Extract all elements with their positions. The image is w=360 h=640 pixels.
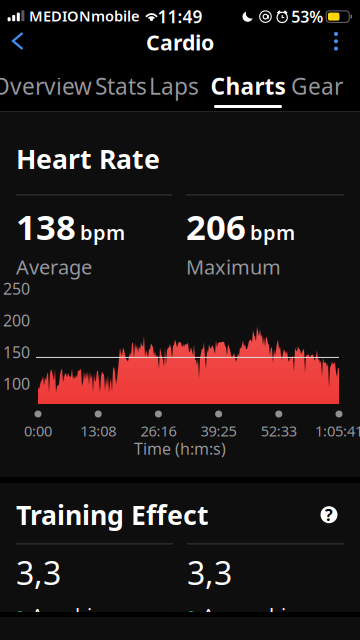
- staticText: Cardio: [146, 28, 214, 56]
- staticText: MEDIONmobile: [29, 6, 140, 25]
- staticText: ?: [325, 504, 333, 525]
- button[interactable]: Stats: [97, 59, 145, 112]
- staticText: Heart Rate: [16, 141, 160, 176]
- staticText: 1:05:41: [315, 421, 360, 440]
- staticText: Gear: [291, 71, 343, 101]
- staticText: 26:16: [140, 421, 176, 440]
- staticText: Stats: [95, 71, 147, 101]
- staticText: Training Effect: [16, 497, 209, 532]
- button[interactable]: Charts: [214, 59, 282, 112]
- staticText: Charts: [210, 71, 285, 101]
- button[interactable]: Gear: [291, 59, 343, 112]
- staticText: Laps: [149, 71, 199, 101]
- button[interactable]: Laps: [153, 59, 195, 112]
- staticText: bpm: [250, 219, 295, 245]
- button[interactable]: Help: [314, 500, 344, 530]
- staticText: Aerobic: [31, 602, 102, 628]
- staticText: 13:08: [80, 421, 116, 440]
- staticText: 150: [3, 341, 30, 362]
- staticText: 0:00: [24, 421, 52, 440]
- staticText: 250: [3, 278, 30, 299]
- staticText: 200: [3, 310, 30, 331]
- staticText: 3,3: [16, 551, 61, 594]
- staticText: 206: [186, 203, 246, 249]
- staticText: 100: [3, 373, 30, 394]
- button[interactable]: More options: [322, 24, 350, 59]
- staticText: 39:25: [201, 421, 237, 440]
- button[interactable]: Overview: [0, 59, 88, 112]
- staticText: 138: [16, 203, 76, 249]
- staticText: 53%: [291, 6, 323, 27]
- staticText: 3,3: [187, 551, 232, 594]
- staticText: Average: [16, 253, 92, 280]
- staticText: bpm: [80, 219, 125, 245]
- staticText: Maximum: [186, 253, 281, 280]
- staticText: 11:49: [157, 5, 202, 28]
- staticText: Anaerobic: [202, 602, 296, 628]
- staticText: Overview: [0, 71, 92, 101]
- staticText: 52:33: [261, 421, 297, 440]
- staticText: Time (h:m:s): [134, 438, 226, 459]
- button[interactable]: Back: [0, 24, 37, 58]
